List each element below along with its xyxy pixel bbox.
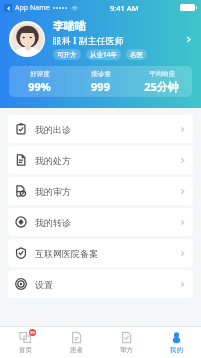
button[interactable]: 审方 [101, 327, 151, 358]
button[interactable]: 设置 [8, 270, 193, 298]
button[interactable]: 互联网医院备案 [8, 239, 193, 267]
staticText: 平均响应 [149, 70, 175, 78]
other: View profile [184, 35, 193, 44]
button[interactable]: 我的处方 [8, 146, 193, 174]
staticText: 互联网医院备案 [35, 248, 98, 259]
staticText: 李喵喵 [53, 19, 86, 33]
staticText: 999 [91, 79, 110, 94]
staticText: 设置 [35, 279, 53, 290]
staticText: 好评度 [30, 70, 50, 78]
staticText: 我的出诊 [35, 124, 71, 135]
staticText: 首页 [19, 346, 32, 354]
button[interactable]: 我的转诊 [8, 208, 193, 236]
staticText: 我的 [170, 346, 183, 354]
staticText: 患者 [70, 346, 83, 354]
staticText: 25分钟 [144, 79, 179, 94]
staticText: 99 [30, 330, 35, 335]
button[interactable]: 99 [0, 327, 51, 358]
staticText: App Name [15, 3, 50, 13]
button[interactable]: 我的 [151, 327, 201, 358]
staticText: 名医 [130, 51, 143, 59]
staticText: 眼科 I 副主任医师 [53, 34, 124, 46]
staticText: 我的处方 [35, 155, 71, 166]
button[interactable]: 我的审方 [8, 177, 193, 205]
button[interactable]: 李喵喵 [0, 17, 201, 61]
button[interactable]: 我的出诊 [8, 115, 193, 143]
button[interactable]: 患者 [51, 327, 101, 358]
staticText: 9:41 AM [110, 3, 139, 13]
staticText: 我的转诊 [35, 217, 71, 228]
staticText: 99% [28, 79, 51, 94]
staticText: 可开方 [57, 51, 77, 59]
staticText: 审方 [120, 346, 133, 354]
staticText: 我的审方 [35, 186, 71, 197]
staticText: 从业14年 [90, 50, 117, 59]
staticText: 接诊量 [91, 70, 111, 78]
